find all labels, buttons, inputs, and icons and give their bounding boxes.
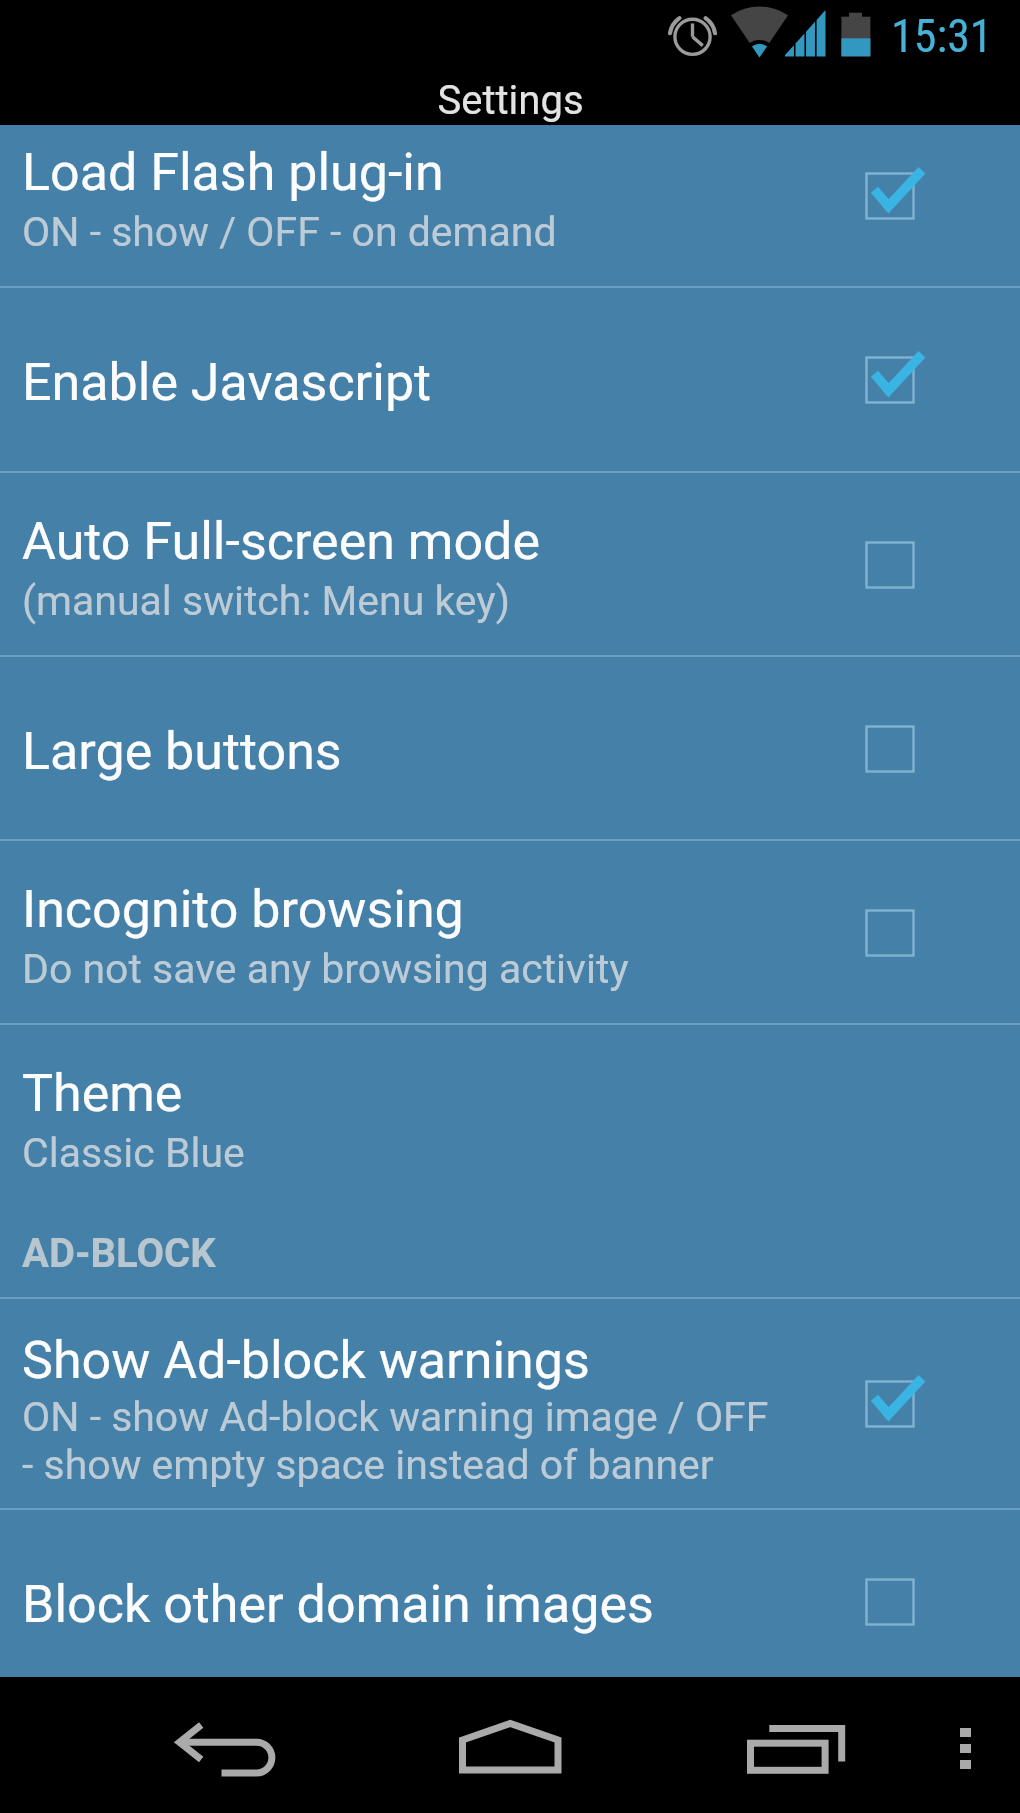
button[interactable]: Show Ad-block warnings (0, 1299, 1020, 1508)
button[interactable]: Enable Javascript (0, 288, 1020, 472)
staticText: ON - show Ad-block warning image / OFF (22, 1393, 769, 1441)
staticText: Classic Blue (22, 1129, 245, 1177)
staticText: Auto Full-screen mode (22, 511, 540, 572)
button[interactable]: Large buttons (0, 657, 1020, 841)
staticText: Show Ad-block warnings (22, 1330, 590, 1391)
staticText: Large buttons (22, 721, 342, 782)
staticText: Incognito browsing (22, 879, 464, 940)
staticText: Theme (22, 1063, 183, 1124)
staticText: ON - show / OFF - on demand (22, 208, 557, 256)
button[interactable]: More options (920, 1698, 1010, 1798)
staticText: (manual switch: Menu key) (22, 577, 510, 625)
button[interactable]: Back (148, 1693, 303, 1797)
button[interactable]: Load Flash plug-in (0, 104, 1020, 288)
staticText: 15:31 (891, 9, 993, 63)
staticText: Enable Javascript (22, 352, 432, 413)
button[interactable]: Block other domain images (0, 1510, 1020, 1694)
button[interactable]: Home (438, 1694, 582, 1799)
staticText: AD-BLOCK (22, 1230, 216, 1277)
button[interactable]: Theme (0, 1025, 1020, 1209)
button[interactable]: Recent apps (726, 1697, 866, 1802)
staticText: Block other domain images (22, 1574, 654, 1635)
staticText: Do not save any browsing activity (22, 945, 629, 993)
staticText: Settings (437, 77, 584, 124)
staticText: - show empty space instead of banner (22, 1441, 714, 1489)
staticText: Load Flash plug-in (22, 142, 444, 203)
button[interactable]: Auto Full-screen mode (0, 473, 1020, 657)
button[interactable]: Incognito browsing (0, 841, 1020, 1025)
